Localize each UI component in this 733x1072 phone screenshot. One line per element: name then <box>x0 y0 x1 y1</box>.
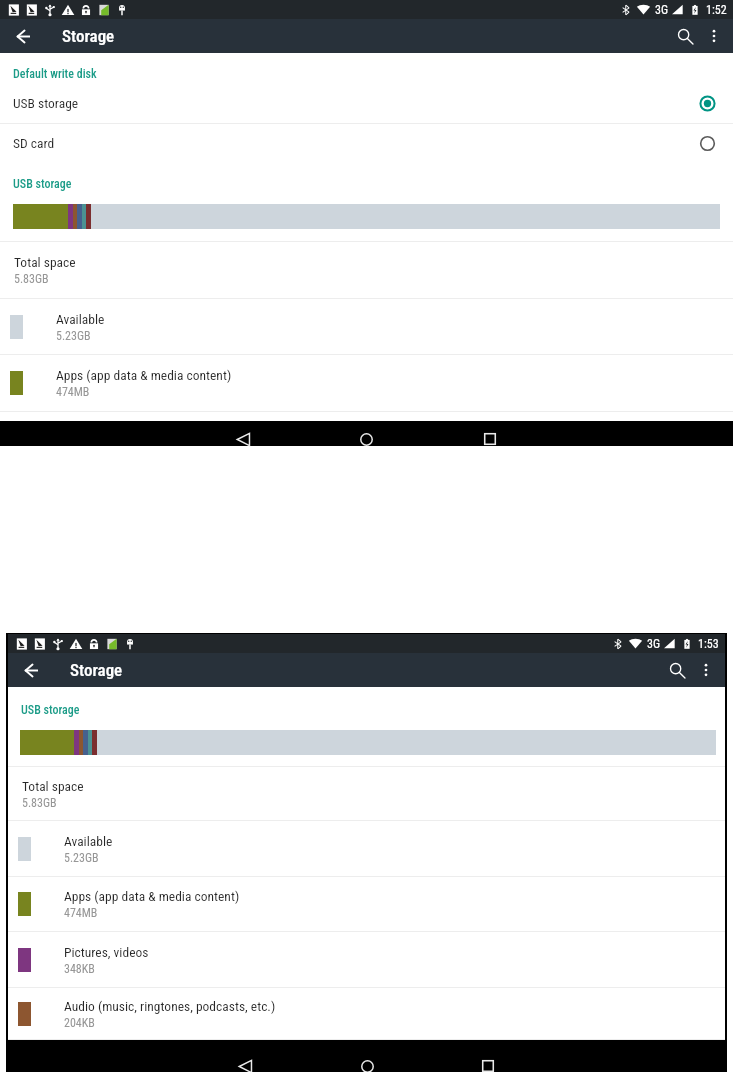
staticText: Total space <box>14 254 76 270</box>
staticText: Audio (music, ringtones, podcasts, etc.) <box>64 998 276 1014</box>
button[interactable]: Back <box>11 24 35 48</box>
button[interactable]: Back <box>237 433 250 446</box>
button[interactable]: Audio (music, ringtones, podcasts, etc.) <box>8 988 725 1039</box>
button[interactable]: Home <box>360 433 373 446</box>
staticText: 1:52 <box>706 3 727 17</box>
button[interactable]: Home <box>361 1060 374 1072</box>
button[interactable]: SD card <box>0 124 733 162</box>
button[interactable]: Available <box>8 821 725 876</box>
staticText: Pictures, videos <box>64 944 149 960</box>
button[interactable]: Total space <box>0 242 733 298</box>
staticText: 474MB <box>56 385 90 399</box>
staticText: 348KB <box>64 962 95 976</box>
staticText: Available <box>64 833 113 849</box>
staticText: 5.23GB <box>56 329 91 343</box>
staticText: Default write disk <box>13 67 97 81</box>
staticText: USB storage <box>13 95 699 111</box>
staticText: 474MB <box>64 906 98 920</box>
staticText: Total space <box>22 778 84 794</box>
button[interactable]: Search <box>670 21 700 51</box>
staticText: 3G <box>647 637 661 651</box>
button[interactable]: Apps (app data & media content) <box>8 877 725 931</box>
button[interactable]: Recents <box>484 433 496 445</box>
button[interactable]: Back <box>239 1060 252 1072</box>
button[interactable]: More options <box>692 656 720 684</box>
staticText: Apps (app data & media content) <box>56 367 232 383</box>
staticText: USB storage <box>21 703 80 717</box>
button[interactable]: Total space <box>8 767 725 820</box>
button[interactable]: Pictures, videos <box>8 932 725 987</box>
button[interactable]: Search <box>662 655 692 685</box>
staticText: Storage <box>70 660 123 680</box>
staticText: 3G <box>655 3 669 17</box>
button[interactable]: Recents <box>482 1060 494 1072</box>
staticText: 5.83GB <box>22 796 57 810</box>
button[interactable]: USB storage <box>0 87 733 123</box>
button[interactable]: Back <box>19 658 43 682</box>
staticText: 204KB <box>64 1016 95 1030</box>
staticText: Apps (app data & media content) <box>64 888 240 904</box>
staticText: 5.83GB <box>14 272 49 286</box>
staticText: USB storage <box>13 177 72 191</box>
staticText: SD card <box>13 135 699 151</box>
button[interactable]: More options <box>700 22 728 50</box>
staticText: Available <box>56 311 105 327</box>
staticText: 5.23GB <box>64 851 99 865</box>
staticText: Storage <box>62 26 115 46</box>
button[interactable]: Apps (app data & media content) <box>0 355 733 411</box>
button[interactable]: Available <box>0 299 733 354</box>
staticText: 1:53 <box>698 637 719 651</box>
